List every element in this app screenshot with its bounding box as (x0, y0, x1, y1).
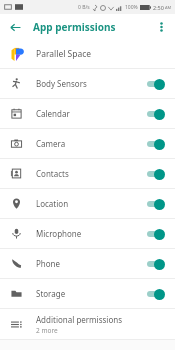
staticText: Body Sensors (36, 78, 145, 89)
button[interactable]: Toggle permission (145, 197, 167, 211)
staticText: 2 more (36, 326, 58, 335)
staticText: AM (165, 5, 172, 10)
staticText: Phone (36, 258, 145, 269)
button[interactable]: Location (0, 189, 175, 218)
button[interactable]: Back (5, 17, 25, 37)
button[interactable]: Additional permissions (0, 309, 175, 339)
button[interactable]: Toggle permission (145, 227, 167, 241)
button[interactable]: Parallel Space (0, 40, 175, 68)
button[interactable]: Body Sensors (0, 69, 175, 98)
button[interactable]: Toggle permission (145, 107, 167, 121)
staticText: 2:50 (153, 4, 164, 11)
staticText: 100% (125, 4, 138, 11)
button[interactable]: Toggle permission (145, 287, 167, 301)
staticText: Calendar (36, 108, 145, 119)
button[interactable]: Storage (0, 279, 175, 308)
staticText: Microphone (36, 228, 145, 239)
staticText: Storage (36, 288, 145, 299)
staticText: Parallel Space (36, 48, 92, 60)
button[interactable]: More options (151, 17, 171, 37)
button[interactable]: Calendar (0, 99, 175, 128)
button[interactable]: Toggle permission (145, 257, 167, 271)
staticText: Location (36, 198, 145, 209)
staticText: Contacts (36, 168, 145, 179)
button[interactable]: Toggle permission (145, 137, 167, 151)
button[interactable]: Contacts (0, 159, 175, 188)
staticText: Camera (36, 138, 145, 149)
staticText: App permissions (33, 20, 116, 34)
button[interactable]: Camera (0, 129, 175, 158)
staticText: Additional permissions (36, 314, 123, 325)
staticText: 0 B/s (78, 4, 90, 11)
button[interactable]: Microphone (0, 219, 175, 248)
button[interactable]: Toggle permission (145, 167, 167, 181)
button[interactable]: Phone (0, 249, 175, 278)
button[interactable]: Toggle permission (145, 77, 167, 91)
